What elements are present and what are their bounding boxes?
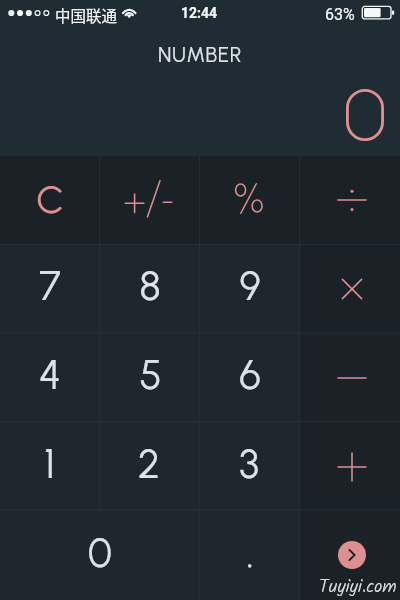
button[interactable]: 0 <box>0 512 200 600</box>
button[interactable]: 4 <box>0 334 100 423</box>
button[interactable]: 5 <box>100 334 200 423</box>
staticText: C <box>36 176 64 223</box>
button[interactable]: Equals <box>300 512 400 600</box>
button[interactable]: Decimal point <box>200 512 300 600</box>
button[interactable]: Divide <box>300 156 400 245</box>
button[interactable]: 2 <box>100 423 200 512</box>
staticText: 63% <box>325 5 355 24</box>
staticText: 8 <box>139 262 161 310</box>
staticText: 2 <box>138 440 160 488</box>
button[interactable]: Percent <box>200 156 300 245</box>
staticText: 9 <box>239 262 261 310</box>
button[interactable]: Plus minus <box>100 156 200 245</box>
staticText: 5 <box>139 351 162 399</box>
button[interactable]: 6 <box>200 334 300 423</box>
staticText: 0 <box>88 529 112 577</box>
staticText: 12:44 <box>181 5 218 21</box>
staticText: 4 <box>39 351 61 399</box>
button[interactable]: 7 <box>0 245 100 334</box>
staticText: Tuyiyi.com <box>319 573 397 600</box>
staticText: 中国联通 <box>55 4 118 26</box>
staticText: NUMBER <box>158 42 243 67</box>
button[interactable]: 8 <box>100 245 200 334</box>
button[interactable]: 1 <box>0 423 100 512</box>
button[interactable]: Multiply <box>300 245 400 334</box>
button[interactable]: Minus <box>300 334 400 423</box>
staticText: 6 <box>239 351 261 399</box>
button[interactable]: 3 <box>200 423 300 512</box>
button[interactable]: Plus <box>300 423 400 512</box>
button[interactable]: 9 <box>200 245 300 334</box>
staticText: 1 <box>44 440 55 488</box>
button[interactable]: Clear <box>0 156 100 245</box>
staticText: 3 <box>239 440 259 488</box>
staticText: . <box>246 529 254 577</box>
staticText: 7 <box>39 262 61 310</box>
